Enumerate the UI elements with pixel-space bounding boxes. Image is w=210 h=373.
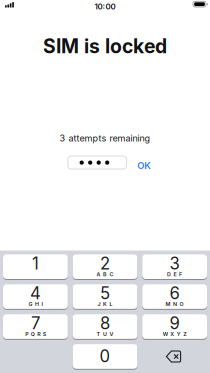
staticText: 8 [100, 313, 110, 333]
button[interactable]: 0 [73, 343, 137, 370]
staticText: E [174, 271, 177, 277]
staticText: 9 [170, 313, 180, 333]
staticText: P [25, 331, 28, 337]
staticText: 7 [31, 313, 40, 333]
staticText: Y [177, 331, 181, 337]
button[interactable]: 6 [142, 283, 207, 310]
staticText: 2 [100, 253, 110, 273]
button[interactable]: 5 [73, 283, 137, 310]
staticText: I [41, 301, 42, 307]
staticText: OK [137, 160, 151, 171]
button[interactable]: 3 [142, 253, 207, 280]
staticText: 5 [100, 283, 110, 303]
staticText: 3 attempts remaining [59, 133, 150, 144]
staticText: G [28, 301, 32, 307]
staticText: S [43, 331, 46, 337]
staticText: X [170, 331, 174, 337]
staticText: B [103, 271, 107, 277]
staticText: D [167, 271, 171, 277]
button[interactable]: 7 [3, 313, 68, 340]
button[interactable]: 9 [142, 313, 207, 340]
staticText: M [166, 301, 171, 307]
staticText: 1 [32, 253, 39, 273]
staticText: U [103, 331, 107, 337]
staticText: 4 [30, 283, 41, 303]
staticText: H [35, 301, 39, 307]
button[interactable]: 4 [3, 283, 68, 310]
staticText: K [103, 301, 107, 307]
staticText: 10:00 [94, 2, 115, 11]
staticText: SIM is locked [43, 34, 167, 58]
staticText: N [173, 301, 177, 307]
staticText: W [163, 331, 168, 337]
button[interactable]: OK [137, 160, 151, 171]
staticText: R [37, 331, 40, 337]
staticText: O [180, 301, 184, 307]
button[interactable]: 1 [3, 253, 68, 280]
staticText: Q [31, 331, 35, 337]
staticText: T [96, 331, 100, 337]
staticText: 3 [170, 253, 180, 273]
staticText: F [179, 271, 182, 277]
staticText: C [109, 271, 113, 277]
staticText: 6 [170, 283, 180, 303]
button[interactable]: Delete [142, 344, 207, 369]
staticText: Z [183, 331, 186, 337]
staticText: L [109, 301, 112, 307]
button[interactable]: 8 [73, 313, 137, 340]
staticText: J [97, 301, 100, 307]
staticText: V [109, 331, 113, 337]
staticText: A [96, 271, 100, 277]
staticText: 0 [99, 346, 110, 366]
button[interactable]: 2 [73, 253, 137, 280]
